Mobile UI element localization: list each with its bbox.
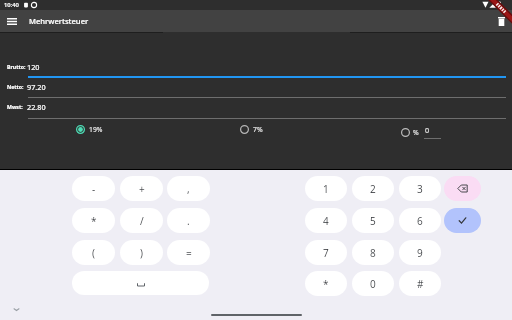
button[interactable]: Menu <box>4 14 19 29</box>
staticText: 0 <box>370 277 376 291</box>
button[interactable]: Hide keyboard <box>10 303 22 315</box>
button[interactable]: = <box>167 240 210 265</box>
staticText: 7 <box>323 246 329 260</box>
staticText: 8 <box>370 246 376 260</box>
button[interactable]: 8 <box>352 240 394 265</box>
button[interactable]: 6 <box>399 208 441 233</box>
staticText: + <box>139 182 145 196</box>
button[interactable]: 7 <box>305 240 347 265</box>
button[interactable]: # <box>399 271 441 296</box>
button[interactable]: / <box>120 208 163 233</box>
staticText: 6 <box>417 214 423 228</box>
button[interactable]: ( <box>72 240 115 265</box>
staticText: - <box>92 182 96 196</box>
button[interactable]: 2 <box>352 176 394 201</box>
button[interactable]: 1 <box>305 176 347 201</box>
button[interactable]: . <box>167 208 210 233</box>
button[interactable]: 5 <box>352 208 394 233</box>
staticText: 10:40 <box>4 1 19 9</box>
button[interactable]: ) <box>120 240 163 265</box>
staticText: 97.20 <box>27 82 46 92</box>
staticText: 4 <box>323 214 329 228</box>
staticText: . <box>187 214 190 228</box>
button[interactable]: Delete <box>494 14 509 29</box>
staticText: 19% <box>89 125 103 134</box>
button[interactable]: Space <box>72 271 209 295</box>
button[interactable]: + <box>120 176 163 201</box>
staticText: = <box>186 246 192 260</box>
button[interactable]: 19% <box>76 125 103 134</box>
staticText: , <box>187 182 190 196</box>
staticText: 3 <box>417 182 423 196</box>
staticText: 9 <box>417 246 423 260</box>
staticText: Netto: <box>7 83 24 90</box>
staticText: 2 <box>370 182 376 196</box>
button[interactable]: Enter <box>444 208 481 233</box>
staticText: % <box>413 128 419 137</box>
staticText: # <box>417 277 424 291</box>
button[interactable]: % <box>401 125 441 139</box>
button[interactable]: Backspace <box>444 176 481 201</box>
staticText: ( <box>92 246 95 260</box>
staticText: * <box>91 214 97 228</box>
staticText: 0 <box>425 125 430 135</box>
button[interactable]: , <box>167 176 210 201</box>
staticText: 22.80 <box>27 102 46 112</box>
button[interactable]: 9 <box>399 240 441 265</box>
button[interactable]: 3 <box>399 176 441 201</box>
staticText: 120 <box>27 62 40 72</box>
staticText: 7% <box>253 125 263 134</box>
staticText: * <box>323 277 329 291</box>
staticText: 1 <box>323 182 329 196</box>
button[interactable]: * <box>72 208 115 233</box>
staticText: / <box>140 214 144 228</box>
staticText: Mehrwertsteuer <box>29 16 89 26</box>
staticText: Brutto: <box>7 63 26 70</box>
button[interactable]: 4 <box>305 208 347 233</box>
staticText: Mwst: <box>7 103 23 110</box>
button[interactable]: - <box>72 176 115 201</box>
button[interactable]: * <box>305 271 347 296</box>
button[interactable]: 7% <box>240 125 263 134</box>
staticText: 5 <box>370 214 376 228</box>
button[interactable]: 0 <box>352 271 394 296</box>
staticText: ) <box>140 246 143 260</box>
